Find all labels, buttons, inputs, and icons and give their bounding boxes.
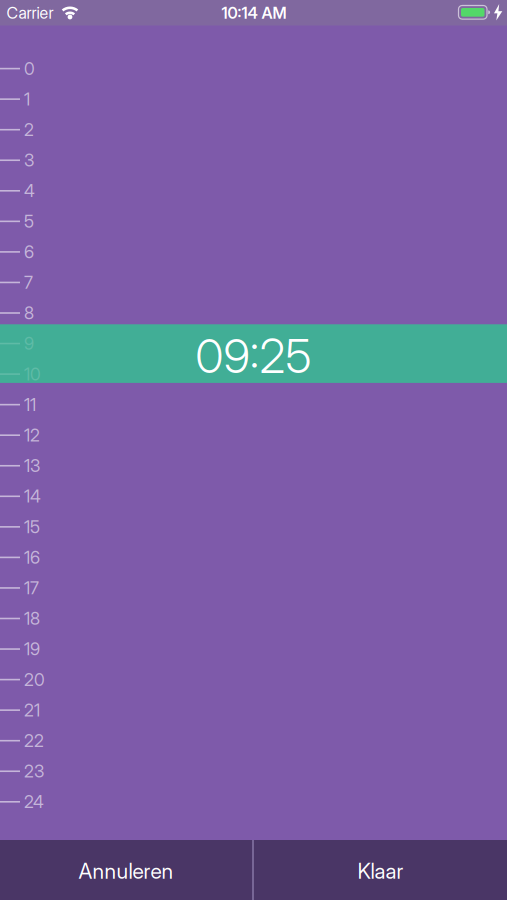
staticText: 10 [24,364,41,385]
staticText: 24 [24,791,44,812]
staticText: 2 [24,119,34,140]
staticText: 22 [24,730,44,751]
staticText: 8 [24,302,34,323]
staticText: Annuleren [78,858,173,884]
staticText: Carrier [6,3,53,23]
staticText: 19 [24,639,40,660]
staticText: 16 [24,547,40,568]
staticText: 13 [24,455,40,476]
staticText: 5 [24,211,34,232]
staticText: 11 [24,394,36,415]
staticText: 23 [24,761,44,782]
staticText: 4 [24,180,35,201]
staticText: 21 [24,700,40,721]
staticText: 14 [24,486,41,507]
staticText: 20 [24,669,45,690]
staticText: 3 [24,150,34,171]
staticText: 09:25 [195,328,311,384]
staticText: 15 [24,516,40,537]
staticText: 9 [24,333,34,354]
staticText: 0 [24,58,35,79]
staticText: 17 [24,577,39,598]
staticText: 12 [24,425,40,446]
staticText: 7 [24,272,33,293]
button[interactable]: Klaar [254,841,507,900]
staticText: Klaar [357,858,403,884]
button[interactable]: Annuleren [0,841,252,900]
staticText: 1 [24,89,30,110]
staticText: 18 [24,608,40,629]
staticText: 10:14 AM [221,3,286,23]
staticText: 6 [24,241,34,262]
